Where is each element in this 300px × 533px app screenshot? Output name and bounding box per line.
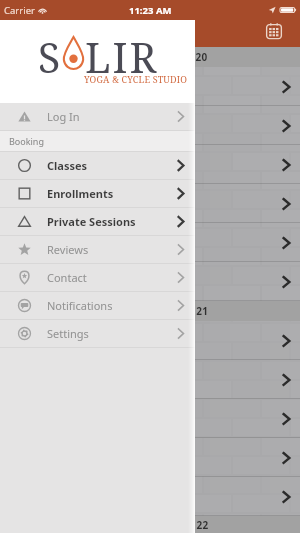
button[interactable]: Reviews — [0, 236, 195, 263]
button[interactable] — [0, 438, 300, 477]
button[interactable] — [0, 184, 300, 223]
button[interactable] — [0, 67, 300, 106]
button[interactable] — [0, 477, 300, 516]
staticText: Private Sessions — [47, 214, 136, 229]
staticText: FRIDAY, MAR 22 — [127, 518, 209, 532]
button[interactable] — [0, 360, 300, 399]
button[interactable]: Classes — [0, 152, 195, 179]
button[interactable]: Enrollments — [0, 180, 195, 207]
button[interactable]: Settings — [0, 320, 195, 347]
button[interactable]: Notifications — [0, 292, 195, 319]
button[interactable] — [0, 106, 300, 145]
button[interactable]: Contact — [0, 264, 195, 291]
staticText: Classes — [47, 158, 88, 173]
staticText: Reviews — [47, 242, 89, 257]
staticText: Notifications — [47, 298, 113, 313]
staticText: Settings — [47, 326, 89, 341]
button[interactable] — [0, 223, 300, 262]
button[interactable]: Log In — [0, 103, 195, 130]
staticText: LIR — [85, 29, 159, 85]
staticText: S — [38, 29, 63, 85]
staticText: YOGA & CYCLE STUDIO — [84, 73, 188, 85]
button[interactable] — [0, 262, 300, 301]
button[interactable] — [0, 321, 300, 360]
button[interactable]: Calendar — [266, 23, 282, 39]
staticText: THURSDAY, MAR 21 — [109, 304, 209, 318]
staticText: Enrollments — [47, 186, 114, 201]
staticText: Carrier — [4, 4, 35, 17]
staticText: 11:23 AM — [129, 4, 172, 17]
button[interactable] — [0, 145, 300, 184]
staticText: Log In — [47, 109, 80, 124]
staticText: Contact — [47, 270, 87, 285]
button[interactable] — [0, 399, 300, 438]
button[interactable]: Private Sessions — [0, 208, 195, 235]
staticText: Booking — [9, 135, 44, 147]
staticText: WEDNESDAY, MAR 20 — [99, 50, 208, 64]
